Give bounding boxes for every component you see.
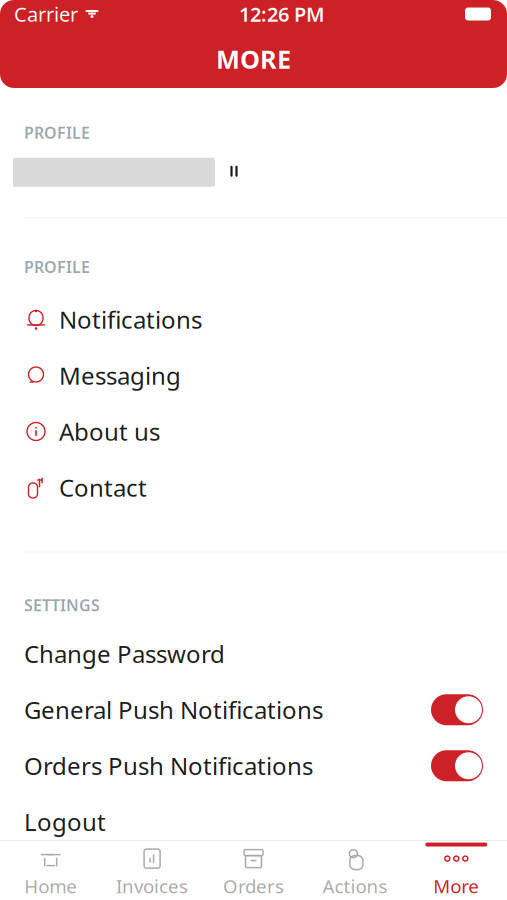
- staticText: PROFILE: [24, 256, 90, 277]
- button[interactable]: Change Password: [0, 626, 507, 682]
- staticText: Actions: [322, 874, 387, 898]
- button[interactable]: Orders Push Notifications: [0, 738, 507, 794]
- button[interactable]: [0, 149, 507, 195]
- staticText: Notifications: [59, 304, 202, 335]
- staticText: Contact: [59, 472, 147, 503]
- button[interactable]: Invoices: [101, 840, 203, 900]
- button[interactable]: About us: [0, 403, 507, 459]
- staticText: PROFILE: [24, 122, 90, 143]
- staticText: Orders: [223, 874, 284, 898]
- button[interactable]: General Push Notifications: [0, 682, 507, 738]
- staticText: 12:26 PM: [239, 1, 325, 27]
- staticText: Carrier: [14, 1, 78, 27]
- button[interactable]: Orders: [203, 840, 304, 900]
- staticText: Change Password: [24, 638, 225, 670]
- staticText: More: [433, 874, 479, 898]
- button[interactable]: Actions: [304, 840, 406, 900]
- button[interactable]: More: [406, 840, 507, 900]
- staticText: General Push Notifications: [24, 694, 323, 726]
- button[interactable]: Notifications: [0, 291, 507, 347]
- staticText: Invoices: [116, 874, 188, 898]
- staticText: Messaging: [59, 360, 181, 391]
- button[interactable]: Messaging: [0, 347, 507, 403]
- button[interactable]: Contact: [0, 459, 507, 515]
- staticText: MORE: [216, 42, 291, 76]
- staticText: Home: [24, 874, 77, 898]
- staticText: Logout: [24, 806, 106, 838]
- staticText: Orders Push Notifications: [24, 750, 313, 782]
- staticText: About us: [59, 416, 160, 447]
- button[interactable]: Logout: [0, 794, 507, 850]
- button[interactable]: Home: [0, 840, 101, 900]
- staticText: SETTINGS: [24, 594, 100, 616]
